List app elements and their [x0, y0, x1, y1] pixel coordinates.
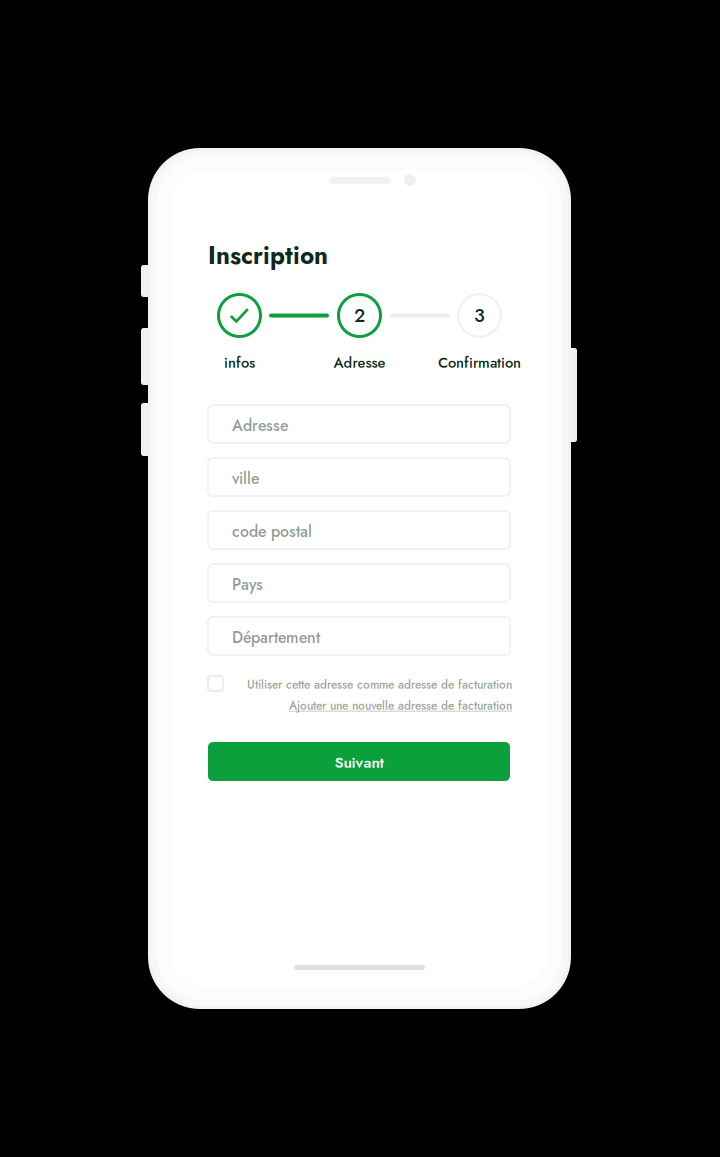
staticText: Utiliser cette adresse comme adresse de …: [247, 676, 512, 693]
button[interactable]: Utiliser cette adresse comme adresse de …: [208, 676, 223, 691]
button[interactable]: Étape 1 : infos, terminée: [217, 293, 262, 338]
staticText: ville: [232, 467, 259, 490]
staticText: infos: [224, 352, 255, 373]
staticText: Ajouter une nouvelle adresse de facturat…: [289, 697, 512, 714]
staticText: Pays: [232, 573, 263, 596]
staticText: Adresse: [232, 414, 288, 437]
button[interactable]: Ajouter une nouvelle adresse de facturat…: [247, 697, 512, 714]
staticText: Confirmation: [438, 352, 521, 373]
staticText: 2: [354, 302, 365, 329]
staticText: Inscription: [208, 238, 328, 273]
staticText: Adresse: [333, 352, 385, 373]
staticText: code postal: [232, 520, 312, 543]
button[interactable]: 2: [337, 293, 382, 338]
button[interactable]: Pays: [208, 564, 510, 602]
button[interactable]: ville: [208, 458, 510, 496]
staticText: Suivant: [334, 751, 383, 773]
button[interactable]: Suivant: [208, 742, 510, 781]
staticText: Département: [232, 626, 320, 649]
button[interactable]: Adresse: [208, 405, 510, 443]
button[interactable]: 3: [457, 293, 502, 338]
staticText: 3: [474, 302, 485, 329]
button[interactable]: code postal: [208, 511, 510, 549]
button[interactable]: Département: [208, 617, 510, 655]
